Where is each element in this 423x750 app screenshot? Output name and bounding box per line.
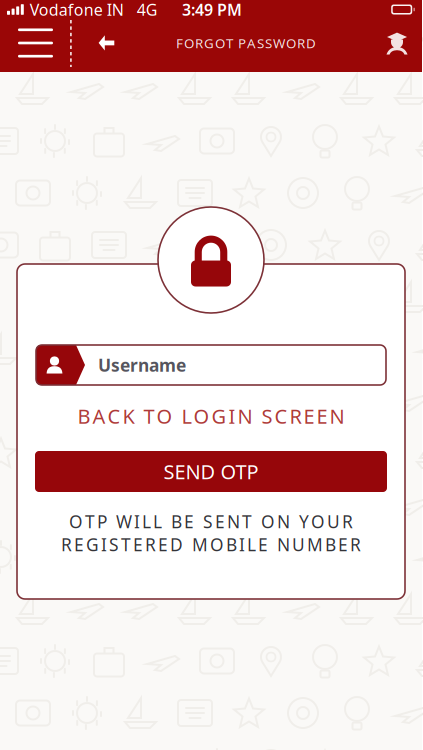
button[interactable]: Student profile	[382, 16, 422, 69]
staticText: 4G	[137, 0, 158, 20]
staticText: Username	[98, 353, 186, 376]
button[interactable]: Back	[72, 16, 129, 69]
staticText: R E G I S T E R E D M O B I L E N U M B …	[61, 533, 361, 556]
staticText: 3:49 PM	[182, 0, 242, 20]
button[interactable]: Menu	[0, 16, 70, 69]
staticText: Vodafone IN	[30, 0, 124, 20]
button[interactable]: B A C K T O L O G I N S C R E E N	[17, 405, 405, 427]
staticText: B A C K T O L O G I N S C R E E N	[77, 403, 344, 429]
staticText: SEND OTP	[163, 458, 258, 485]
staticText: F O R G O T P A S S W O R D	[176, 34, 316, 52]
staticText: O T P W I L L B E S E N T O N Y O U R	[69, 510, 353, 533]
button[interactable]: SEND OTP	[17, 451, 405, 492]
